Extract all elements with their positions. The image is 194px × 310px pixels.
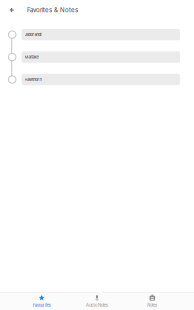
button[interactable]: Hawthorn	[0, 68, 194, 91]
staticText: Favourites	[33, 303, 51, 308]
staticText: Maitake	[25, 55, 39, 59]
button[interactable]: Maitake	[0, 46, 194, 68]
staticText: Hawthorn	[25, 77, 42, 82]
button[interactable]: Audio Notes	[69, 293, 125, 310]
staticText: Favorites & Notes	[27, 6, 78, 14]
button[interactable]: Jaborandi	[0, 23, 194, 46]
staticText: Jaborandi	[25, 32, 42, 37]
staticText: Audio Notes	[86, 303, 108, 308]
staticText: Notes	[147, 303, 157, 308]
button[interactable]: Notes	[125, 293, 180, 310]
button[interactable]: Favourites	[14, 293, 69, 310]
button[interactable]: Back	[3, 0, 20, 20]
